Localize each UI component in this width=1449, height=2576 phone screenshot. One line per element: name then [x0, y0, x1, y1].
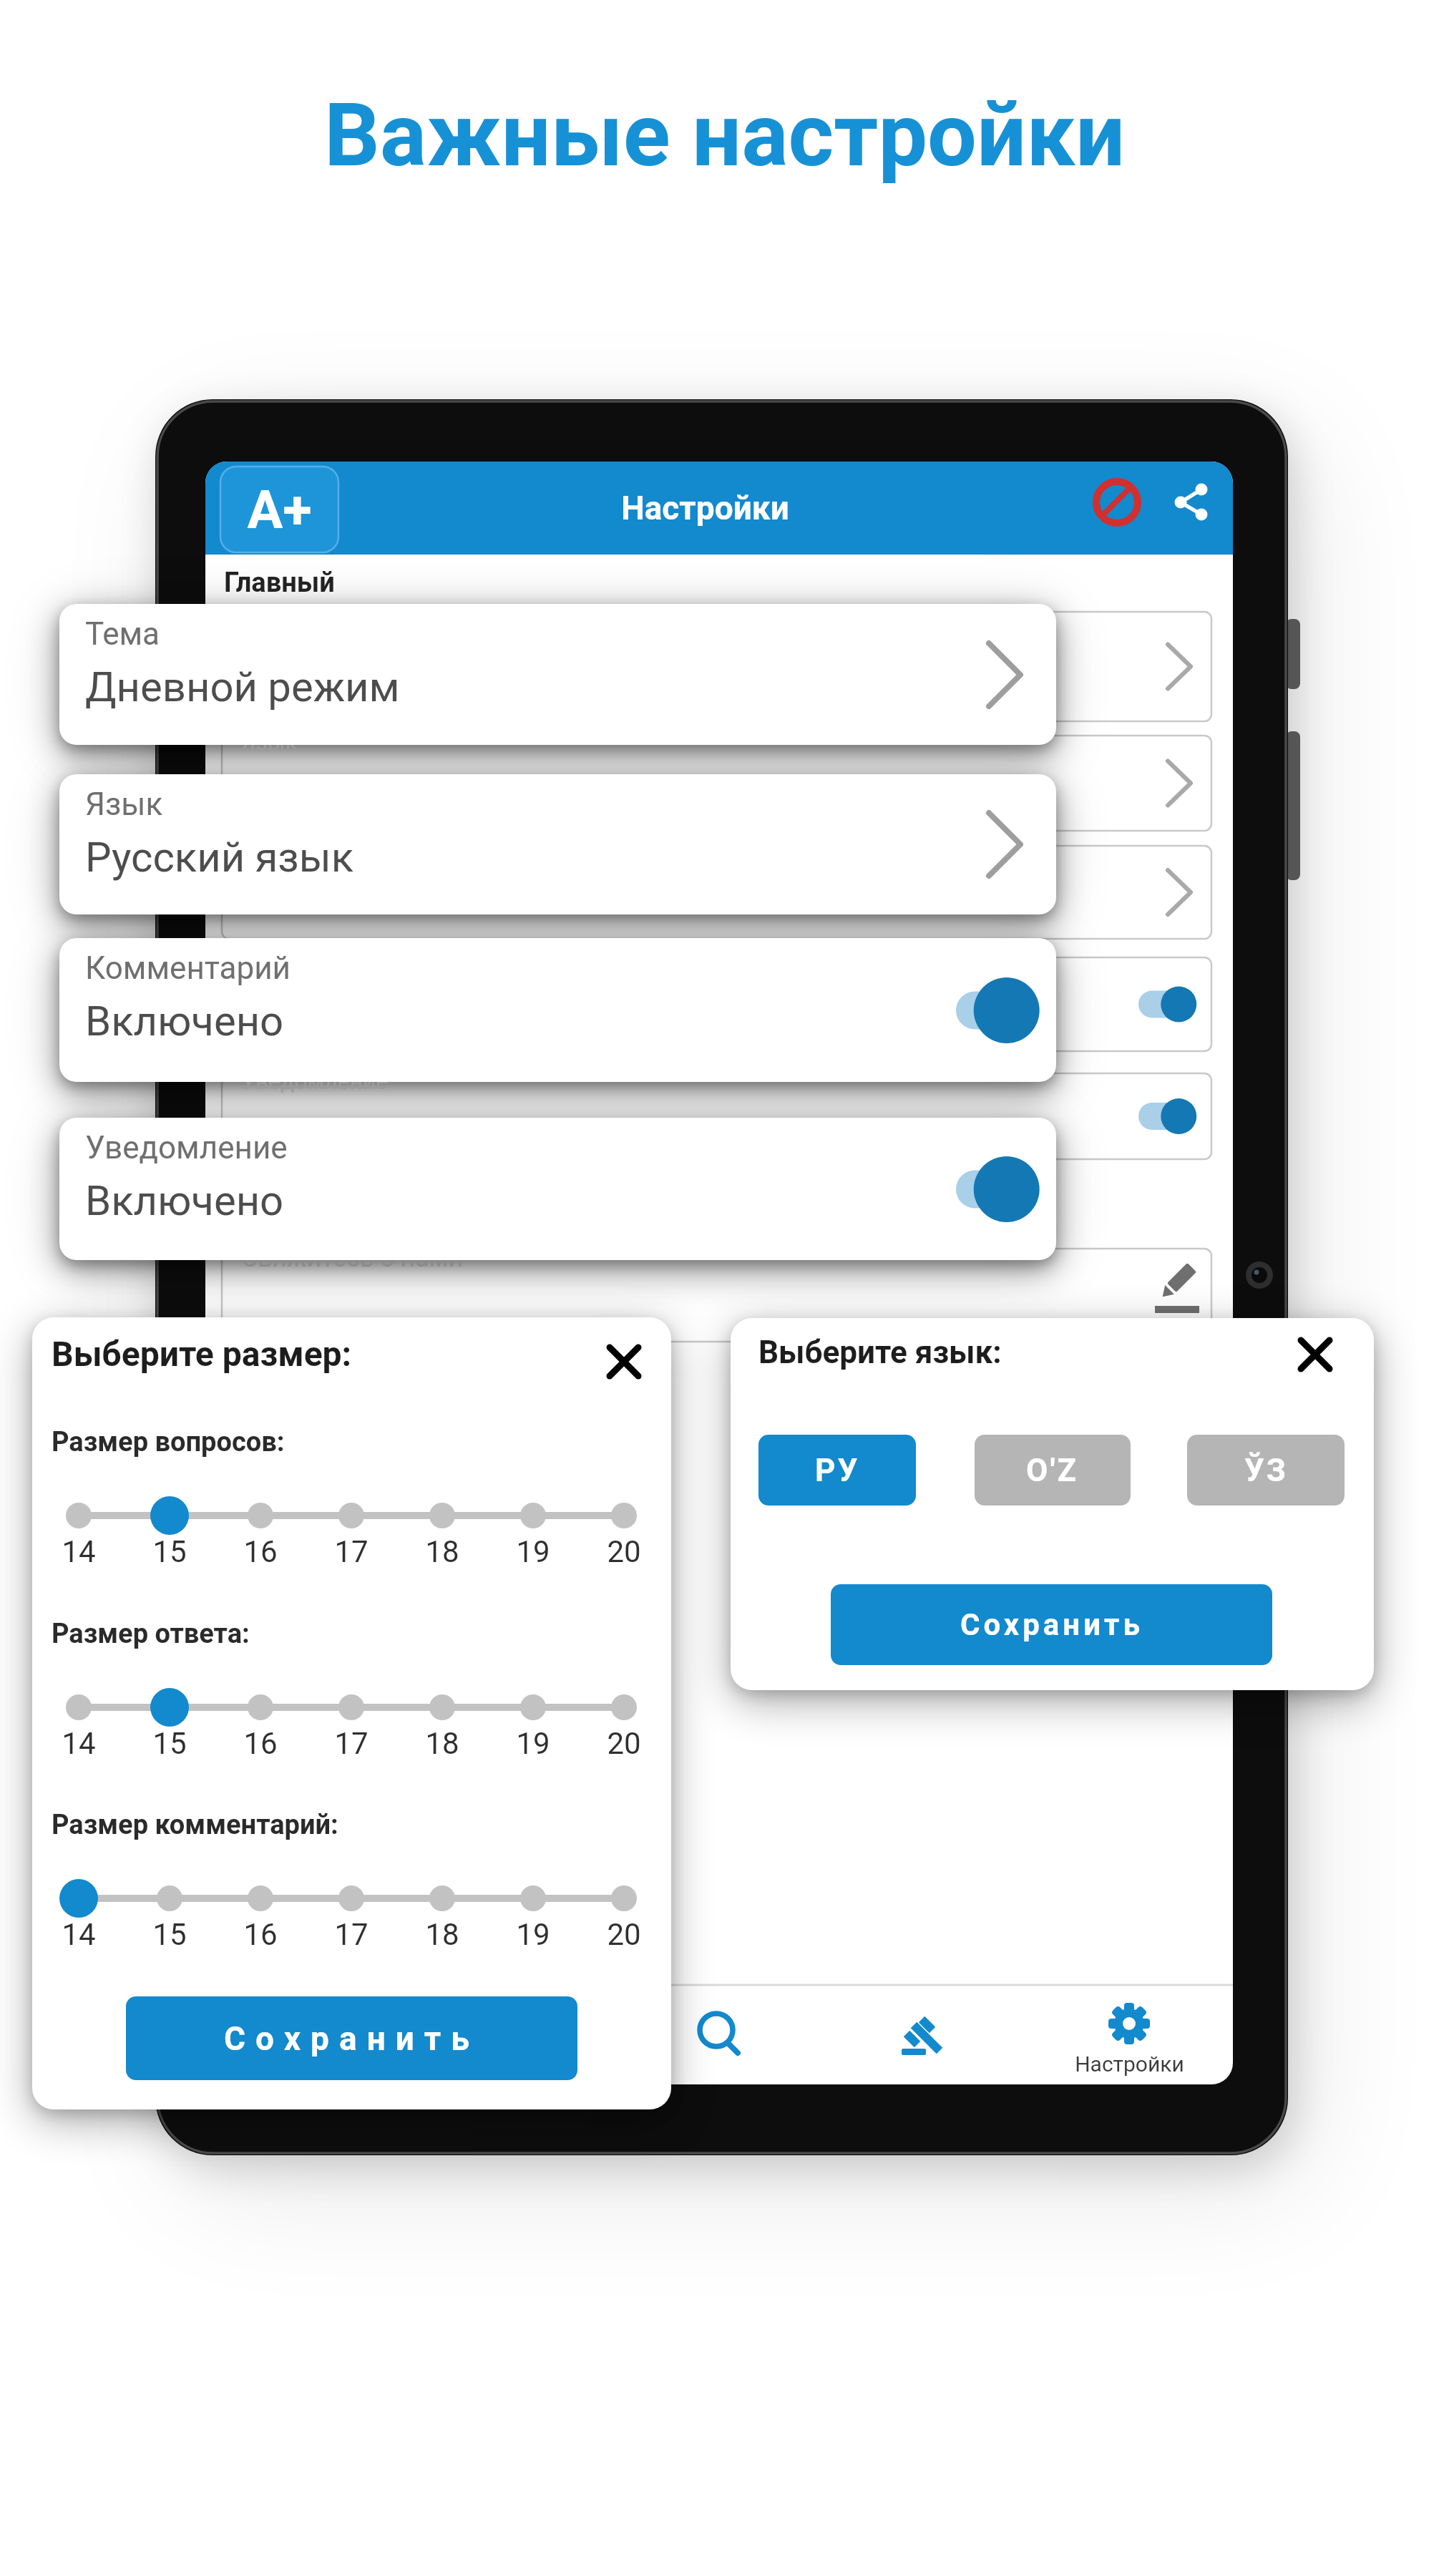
staticText: Настройки [621, 489, 789, 527]
staticText: РУ [815, 1452, 860, 1489]
staticText: Главный [224, 567, 335, 599]
staticText: 20 [607, 1917, 641, 1952]
button[interactable]: ЎЗ [1187, 1435, 1345, 1506]
staticText: 16 [243, 1534, 278, 1569]
staticText: Комментарий [85, 950, 291, 987]
staticText: Включено [85, 1176, 284, 1225]
staticText: Уведомление [85, 1129, 288, 1166]
staticText: 18 [425, 1534, 459, 1569]
staticText: ЎЗ [1244, 1452, 1288, 1489]
staticText: 15 [152, 1534, 187, 1569]
staticText: Размер вопросов: [52, 1426, 285, 1458]
staticText: 18 [425, 1726, 459, 1761]
staticText: Выберите язык: [758, 1334, 1002, 1371]
staticText: 16 [243, 1726, 278, 1761]
staticText: 17 [334, 1917, 369, 1952]
staticText: O'Z [1026, 1452, 1079, 1489]
staticText: 19 [516, 1534, 550, 1569]
button[interactable] [61, 1494, 642, 1537]
staticText: Размер ответа: [52, 1618, 250, 1650]
button[interactable]: O'Z [975, 1435, 1131, 1506]
staticText: 14 [62, 1917, 96, 1952]
staticText: Важные настройки [324, 84, 1126, 187]
button[interactable] [61, 1877, 642, 1920]
button[interactable] [1292, 1332, 1338, 1377]
staticText: 14 [62, 1534, 96, 1569]
button[interactable] [874, 1988, 969, 2082]
staticText: Свяжитесь с нами [241, 1243, 464, 1273]
staticText: Уведомление [241, 1068, 389, 1095]
staticText: Язык [241, 728, 298, 756]
staticText: 14 [62, 1726, 96, 1761]
button[interactable] [1065, 1988, 1194, 2082]
staticText: Русский язык [85, 833, 354, 882]
button[interactable] [61, 1686, 642, 1729]
button[interactable] [1165, 471, 1219, 534]
button[interactable]: Сохранить [126, 1996, 577, 2080]
staticText: Тема [85, 615, 160, 653]
staticText: Настройки [1075, 2051, 1184, 2077]
button[interactable]: РУ [758, 1435, 916, 1506]
staticText: Включено [85, 997, 284, 1045]
button[interactable]: Уведомление [59, 1118, 1056, 1260]
staticText: Дневной режим [85, 663, 400, 711]
button[interactable] [670, 1988, 764, 2082]
button[interactable] [220, 467, 338, 552]
staticText: 15 [152, 1917, 187, 1952]
button[interactable]: Комментарий [59, 938, 1056, 1082]
staticText: A+ [247, 479, 312, 541]
button[interactable]: Сохранить [831, 1584, 1272, 1665]
staticText: Язык [85, 786, 163, 823]
staticText: 18 [425, 1917, 459, 1952]
staticText: 20 [607, 1726, 641, 1761]
staticText: 19 [516, 1917, 550, 1952]
button[interactable] [1087, 471, 1147, 534]
staticText: 19 [516, 1726, 550, 1761]
staticText: Сохранить [224, 2019, 479, 2058]
button[interactable]: Язык [59, 774, 1056, 914]
button[interactable]: Тема [59, 604, 1056, 745]
staticText: 16 [243, 1917, 278, 1952]
staticText: 17 [334, 1726, 369, 1761]
staticText: Сохранить [960, 1607, 1143, 1642]
staticText: 15 [152, 1726, 187, 1761]
staticText: Выберите размер: [52, 1334, 352, 1374]
staticText: Размер комментарий: [52, 1809, 338, 1841]
staticText: 20 [607, 1534, 641, 1569]
staticText: 17 [334, 1534, 369, 1569]
button[interactable] [601, 1339, 647, 1385]
